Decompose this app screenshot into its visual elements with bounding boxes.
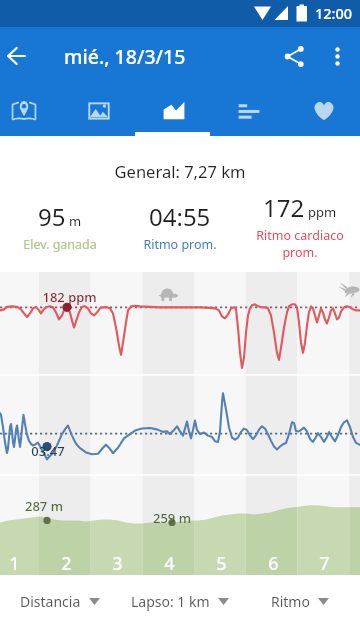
- button[interactable]: 172: [240, 191, 360, 261]
- staticText: 287 m: [25, 497, 63, 515]
- button[interactable]: 95: [0, 200, 120, 253]
- staticText: Ritmo: [271, 592, 310, 611]
- staticText: Ritmo cardiaco prom.: [246, 227, 354, 261]
- button[interactable]: Back: [0, 32, 40, 80]
- staticText: 5: [216, 551, 227, 576]
- button[interactable]: Share: [270, 32, 318, 80]
- button[interactable]: Ritmo: [240, 575, 360, 627]
- staticText: 2: [61, 551, 72, 576]
- staticText: mié., 18/3/15: [64, 43, 186, 70]
- staticText: 1: [9, 551, 20, 576]
- staticText: 259 m: [153, 509, 191, 527]
- button[interactable]: Charts: [136, 85, 211, 136]
- staticText: 12:00: [315, 3, 353, 23]
- staticText: m: [69, 212, 82, 230]
- staticText: 7: [319, 551, 330, 576]
- staticText: Lapso: 1 km: [131, 592, 210, 611]
- button[interactable]: Map: [0, 85, 61, 136]
- staticText: 3: [112, 551, 123, 576]
- button[interactable]: Lapso: 1 km: [120, 575, 240, 627]
- staticText: 182 ppm: [42, 288, 97, 306]
- button[interactable]: Photos: [61, 85, 136, 136]
- staticText: 03:47: [31, 442, 65, 460]
- staticText: Distancia: [20, 592, 81, 611]
- staticText: General: 7,27 km: [0, 160, 360, 182]
- staticText: 95: [38, 200, 66, 233]
- staticText: 4: [164, 551, 175, 576]
- staticText: 6: [268, 551, 279, 576]
- button[interactable]: 04:55: [120, 200, 240, 253]
- button[interactable]: Distancia: [0, 575, 120, 627]
- staticText: 04:55: [149, 200, 211, 233]
- button[interactable]: More options: [313, 32, 360, 80]
- staticText: Elev. ganada: [23, 236, 97, 253]
- staticText: Ritmo prom.: [143, 236, 217, 253]
- staticText: 172: [263, 191, 305, 224]
- staticText: ppm: [308, 203, 337, 221]
- button[interactable]: Heart rate: [286, 85, 360, 136]
- button[interactable]: Splits: [211, 85, 286, 136]
